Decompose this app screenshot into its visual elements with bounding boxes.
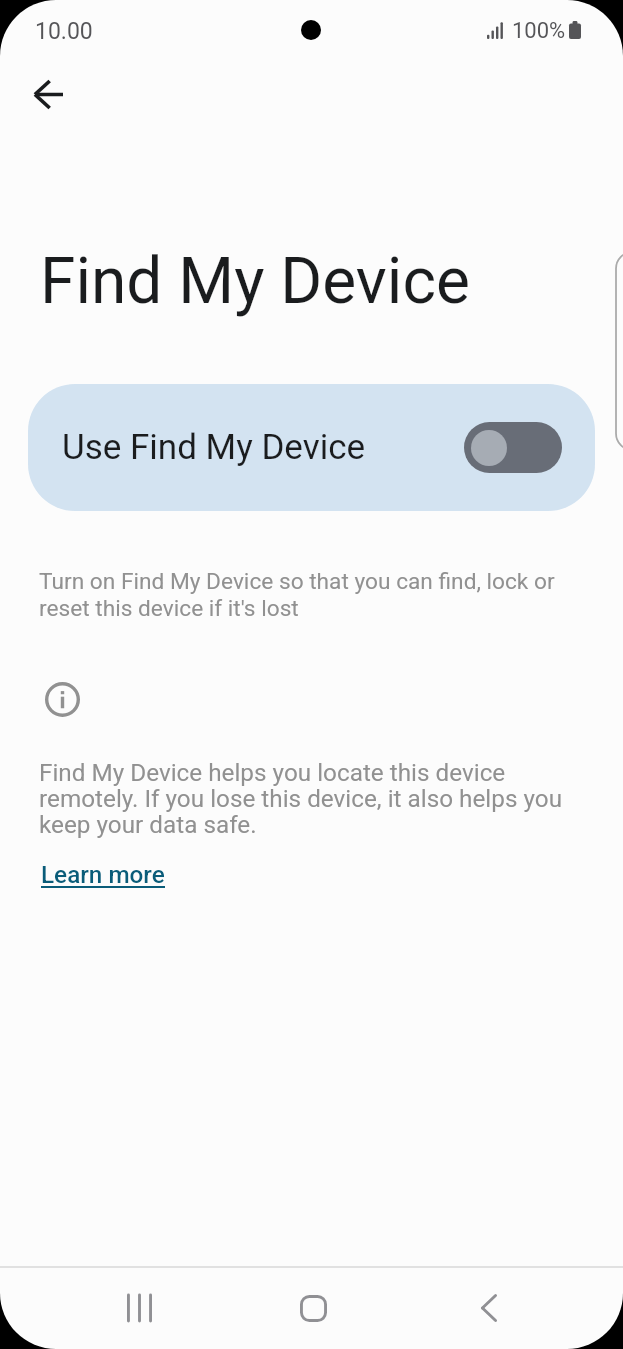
staticText: Turn on Find My Device so that you can f… xyxy=(39,568,579,622)
button[interactable]: Use Find My Device xyxy=(28,384,595,511)
staticText: Find My Device xyxy=(40,244,470,319)
staticText: Find My Device helps you locate this dev… xyxy=(39,758,579,838)
staticText: Use Find My Device xyxy=(62,427,366,468)
button[interactable]: Learn more xyxy=(41,860,165,892)
button[interactable]: Navigate up xyxy=(18,64,79,125)
staticText: 100% xyxy=(512,18,566,44)
staticText: 10.00 xyxy=(35,18,93,45)
button[interactable]: Back xyxy=(448,1267,529,1349)
button[interactable]: Recents xyxy=(99,1267,180,1349)
button[interactable]: Use Find My Device toggle xyxy=(464,422,562,473)
button[interactable]: Home xyxy=(273,1267,354,1349)
staticText: Learn more xyxy=(41,860,165,888)
